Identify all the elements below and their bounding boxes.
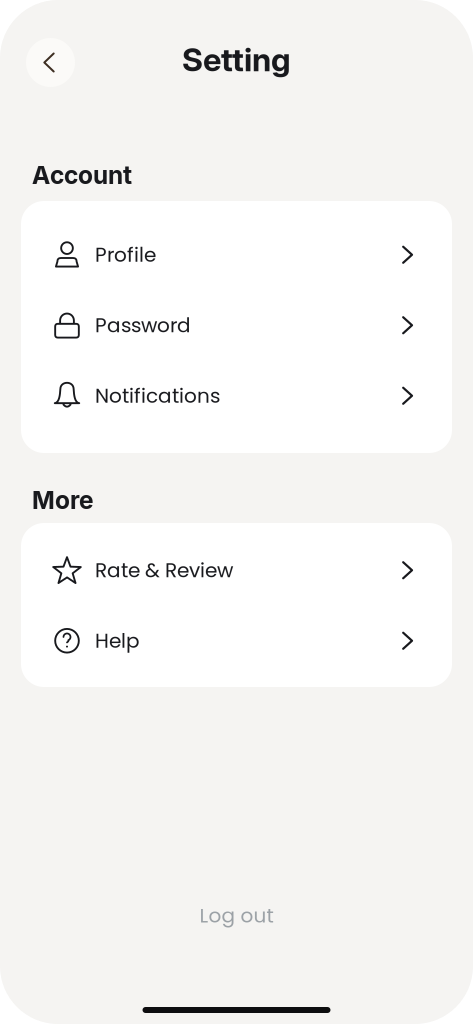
staticText: Rate & Review <box>95 556 233 584</box>
staticText: Notifications <box>95 382 220 410</box>
staticText: More <box>32 485 93 515</box>
button[interactable]: Profile <box>21 219 452 290</box>
staticText: Account <box>32 160 132 190</box>
button[interactable]: Back <box>26 38 75 87</box>
staticText: Profile <box>95 241 156 269</box>
button[interactable]: Rate & Review <box>21 535 452 605</box>
button[interactable]: Log out <box>0 892 473 938</box>
button[interactable]: Password <box>21 290 452 360</box>
staticText: Setting <box>182 40 291 79</box>
staticText: Password <box>95 311 191 339</box>
button[interactable]: Notifications <box>21 360 452 431</box>
button[interactable]: Help <box>21 605 452 676</box>
staticText: Log out <box>199 901 273 929</box>
staticText: Help <box>95 627 140 655</box>
